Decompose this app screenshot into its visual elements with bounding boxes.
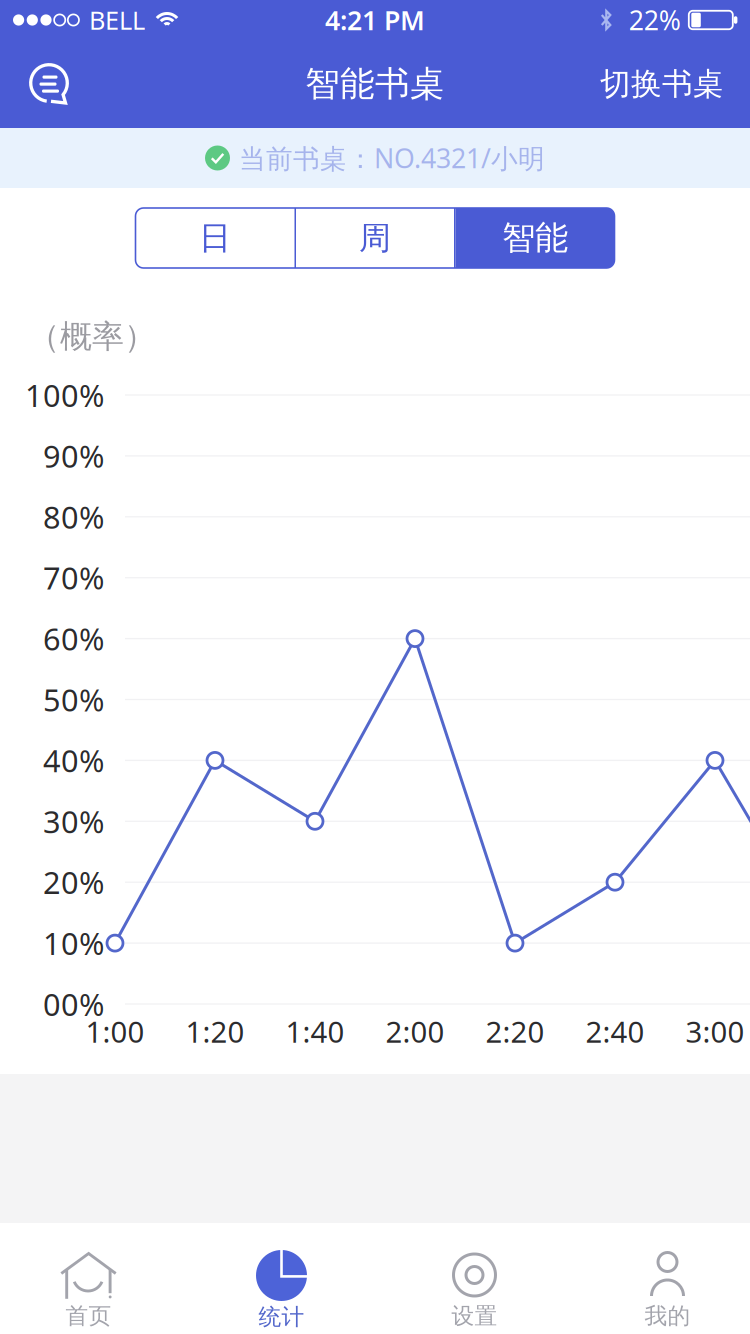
staticText: 智能书桌 [305, 63, 445, 105]
button[interactable]: 智能 [455, 208, 614, 268]
staticText: 40% [43, 740, 104, 781]
staticText: 50% [43, 679, 104, 720]
staticText: 3:00 [685, 1012, 744, 1051]
button[interactable]: 切换书桌 [600, 42, 724, 126]
button[interactable]: Messages [14, 42, 86, 126]
staticText: 智能 [502, 217, 568, 258]
staticText: （概率） [28, 317, 156, 356]
staticText: 22% [629, 2, 681, 38]
staticText: 60% [43, 618, 104, 659]
staticText: 2:40 [585, 1012, 644, 1051]
button[interactable]: 首页 [0, 1223, 185, 1334]
button[interactable]: 日 [135, 208, 294, 268]
staticText: 100% [25, 375, 104, 415]
button[interactable]: 设置 [378, 1223, 571, 1334]
staticText: 2:20 [485, 1012, 544, 1051]
staticText: 设置 [451, 1302, 497, 1330]
staticText: 00% [43, 984, 104, 1024]
staticText: 首页 [65, 1302, 111, 1330]
button[interactable]: 我的 [571, 1223, 750, 1334]
staticText: 20% [43, 862, 104, 902]
staticText: 1:00 [85, 1012, 144, 1051]
staticText: 4:21 PM [325, 2, 425, 38]
staticText: 日 [199, 218, 231, 258]
staticText: 统计 [258, 1303, 304, 1331]
staticText: 1:40 [285, 1012, 344, 1051]
staticText: 周 [359, 218, 391, 258]
staticText: 切换书桌 [600, 65, 724, 103]
staticText: 我的 [644, 1302, 690, 1330]
staticText: 当前书桌：NO.4321/小明 [239, 140, 545, 176]
staticText: BELL [89, 3, 145, 37]
staticText: 90% [43, 435, 104, 476]
staticText: 10% [43, 923, 104, 963]
staticText: 1:20 [185, 1012, 244, 1051]
staticText: 80% [43, 496, 104, 537]
button[interactable]: 周 [296, 208, 454, 268]
staticText: 70% [43, 557, 104, 598]
button[interactable]: 统计 [185, 1223, 378, 1334]
staticText: 2:00 [385, 1012, 444, 1051]
staticText: 30% [43, 801, 104, 842]
